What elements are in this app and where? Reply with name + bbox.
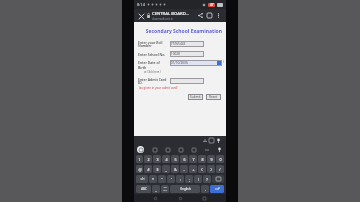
button[interactable]: & [171,165,179,173]
button[interactable]: ) [207,165,215,173]
button[interactable]: 6 [180,155,188,163]
staticText: 1 2 3 4 [163,186,167,192]
button[interactable]: Pick date [217,61,222,66]
button[interactable]: 8 [198,155,206,163]
button[interactable]: CENTRAL BOARD… [152,11,195,21]
staticText: or Click here ) [144,70,161,74]
button[interactable]: Translate [201,137,208,144]
button[interactable]: 4 [162,155,170,163]
staticText: 5 [174,157,177,162]
button[interactable]: 9 [207,155,215,163]
staticText: # [147,167,150,172]
staticText: ) [210,167,212,172]
button[interactable]: Reset [206,94,221,100]
staticText: " [161,177,163,182]
button[interactable]: 1 [136,155,143,163]
button[interactable]: Tabs [205,11,214,20]
button[interactable]: _ [152,185,160,193]
button[interactable]: $ [153,165,161,173]
button[interactable]: Close [137,12,145,20]
staticText: 3 [156,157,159,162]
button[interactable]: Voice [215,137,222,144]
staticText: : [180,177,181,182]
button[interactable]: ? [203,175,211,183]
staticText: Enter your Roll Number [138,40,168,48]
staticText: 6 [183,157,186,162]
staticText: 1 [138,157,141,162]
staticText: 4 [165,157,168,162]
staticText: 2 [147,157,150,162]
button[interactable]: : [176,175,184,183]
button[interactable]: * [149,175,157,183]
button[interactable]: 5 [171,155,179,163]
button[interactable]: English [170,185,200,193]
staticText: Enter School No. [138,52,168,57]
button[interactable]: _ [162,165,170,173]
staticText: Submit [190,95,201,99]
staticText: ' [171,177,172,182]
button[interactable]: 3 [153,155,161,163]
button[interactable]: Submit [188,94,203,100]
staticText: * [152,177,154,182]
staticText: (as given in your admit card) [139,86,178,90]
staticText: =\< [140,177,145,181]
button[interactable]: 2 [144,155,152,163]
button[interactable]: " [158,175,166,183]
button[interactable]: 0 [216,155,224,163]
staticText: & [174,167,177,172]
staticText: 8:14 [137,2,145,7]
button[interactable]: / [216,165,224,173]
button[interactable]: 10028 [170,51,204,57]
staticText: ) [223,60,224,64]
button[interactable]: Search [190,146,197,153]
button[interactable]: @ [136,165,143,173]
button[interactable]: More options [214,11,223,20]
staticText: Enter Date of Birth [138,60,168,70]
staticText: 47 [210,3,214,7]
button[interactable]: ' [167,175,175,183]
staticText: English [180,187,191,191]
staticText: CENTRAL BOARD… [152,11,189,17]
staticText: 01/10/2006 [170,61,188,65]
staticText: _ [165,167,167,172]
button[interactable]: ( [198,165,206,173]
button[interactable]: GIF [164,146,171,153]
button[interactable]: Recents [201,195,208,202]
button[interactable]: ! [194,175,202,183]
button[interactable]: 7 [189,155,197,163]
button[interactable]: Sticker [151,146,158,153]
staticText: 9 [210,157,213,162]
button[interactable]: Emoji [137,146,144,153]
button[interactable]: ABC [136,185,151,193]
button[interactable]: Home [177,195,184,202]
staticText: + [192,167,195,172]
button[interactable]: 01/10/2006 [170,60,222,66]
button[interactable]: ; [185,175,193,183]
button[interactable] [170,78,204,84]
button[interactable]: More [203,146,210,153]
button[interactable]: Share [196,11,205,20]
staticText: $ [156,167,159,172]
button[interactable]: . [201,185,209,193]
staticText: ? [206,177,208,182]
button[interactable]: - [180,165,188,173]
button[interactable]: + [189,165,197,173]
button[interactable]: Backspace [212,175,224,183]
button[interactable]: Clipboard [208,137,215,144]
staticText: 7 [192,157,195,162]
button[interactable]: # [144,165,152,173]
staticText: @ [138,167,142,172]
button[interactable]: Back [152,195,159,202]
button[interactable]: =\< [136,175,148,183]
staticText: Reset [209,95,218,99]
staticText: cbseresults.nic.in [152,17,173,21]
button[interactable]: 1 2 3 4 [161,185,169,193]
staticText: _ [155,187,157,192]
button[interactable]: Enter [210,185,224,193]
button[interactable]: 75765443 [170,41,204,47]
staticText: ( [201,167,203,172]
button[interactable]: Settings [177,146,184,153]
button[interactable]: Voice input [216,146,223,153]
staticText: - [183,167,185,172]
